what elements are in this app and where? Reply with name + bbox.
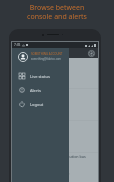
button[interactable]: Settings — [88, 50, 95, 57]
button[interactable]: Humidity warehouse B — [12, 121, 98, 153]
button[interactable]: Line voltage of the main distribution bu… — [12, 153, 98, 182]
button[interactable]: Alerts — [12, 83, 69, 97]
button[interactable]: Compressor pressure unit — [12, 89, 98, 121]
staticText: 7:35 — [14, 43, 21, 47]
staticText: Alerts — [30, 88, 41, 93]
staticText: Boiler room temperature — [16, 58, 59, 63]
staticText: Live status — [30, 74, 50, 79]
staticText: Browse between console and alerts — [27, 3, 87, 21]
button[interactable]: Boiler room temperature — [12, 57, 98, 89]
button[interactable]: SOMETHING ACCOUNT — [12, 48, 69, 65]
staticText: Line voltage of the main distribution bu… — [16, 154, 86, 159]
staticText: SOMETHING ACCOUNT — [31, 52, 63, 56]
staticText: Updated just now in the normal range — [16, 172, 70, 176]
staticText: Compressor pressure unit — [16, 90, 61, 95]
button[interactable]: Logout — [12, 97, 69, 111]
staticText: something@fabrico.com — [31, 57, 61, 61]
staticText: Logout — [30, 102, 44, 107]
button[interactable]: Live status — [12, 69, 69, 83]
